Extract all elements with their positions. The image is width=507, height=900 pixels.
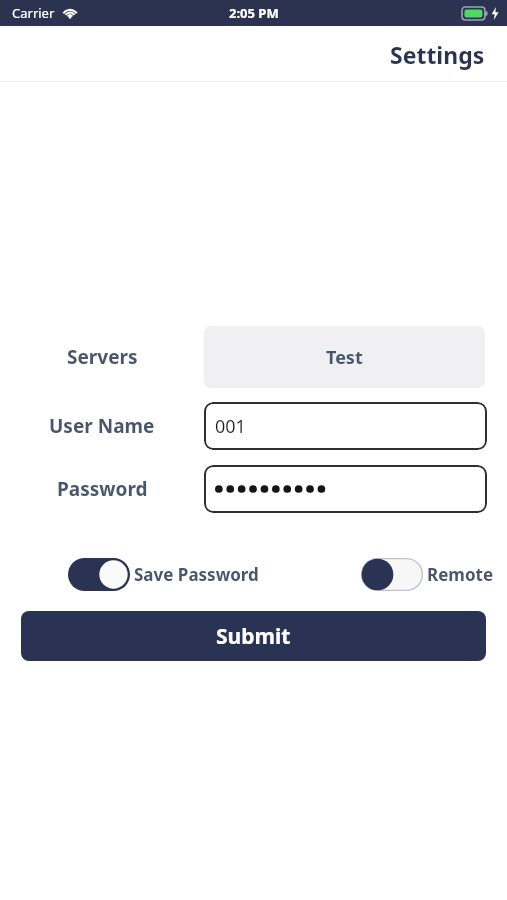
staticText: 001: [215, 414, 246, 439]
button[interactable]: Submit: [21, 611, 486, 661]
staticText: Servers: [67, 344, 138, 370]
staticText: Settings: [390, 39, 485, 70]
button[interactable]: [204, 465, 487, 513]
button[interactable]: Toggle on: [68, 558, 259, 591]
button[interactable]: Toggle on: [68, 558, 130, 591]
button[interactable]: 001: [204, 402, 487, 450]
staticText: Save Password: [134, 563, 259, 586]
staticText: Carrier: [12, 4, 55, 22]
staticText: Test: [326, 345, 363, 370]
button[interactable]: Toggle off: [361, 558, 423, 591]
button[interactable]: Toggle off: [361, 558, 494, 591]
staticText: User Name: [49, 413, 155, 439]
staticText: Password: [57, 476, 148, 502]
button[interactable]: Test: [204, 326, 485, 388]
staticText: Remote: [427, 563, 494, 586]
staticText: 2:05 PM: [229, 4, 279, 22]
staticText: Submit: [216, 622, 291, 651]
